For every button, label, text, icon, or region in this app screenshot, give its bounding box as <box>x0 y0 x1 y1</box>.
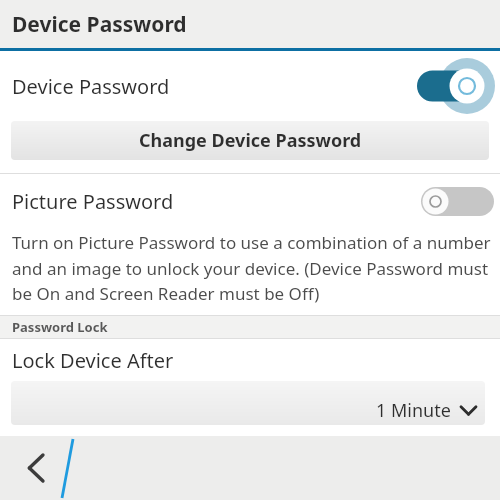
staticText: Change Device Password <box>139 128 362 153</box>
staticText: Picture Password <box>12 188 174 215</box>
button[interactable]: 1 Minute <box>11 381 485 425</box>
button[interactable]: Back <box>14 446 58 490</box>
button[interactable]: Device Password <box>0 51 500 121</box>
button[interactable]: Picture Password, off <box>421 187 494 216</box>
staticText: Lock Device After <box>12 347 174 374</box>
staticText: 1 Minute <box>376 398 451 423</box>
staticText: Device Password <box>12 10 187 39</box>
staticText: Turn on Picture Password to use a combin… <box>12 231 492 305</box>
staticText: Device Password <box>12 73 170 100</box>
button[interactable]: Picture Password <box>0 174 500 229</box>
button[interactable]: Device Password, on <box>411 56 497 116</box>
staticText: Password Lock <box>12 318 108 336</box>
button[interactable]: Change Device Password <box>11 121 489 160</box>
